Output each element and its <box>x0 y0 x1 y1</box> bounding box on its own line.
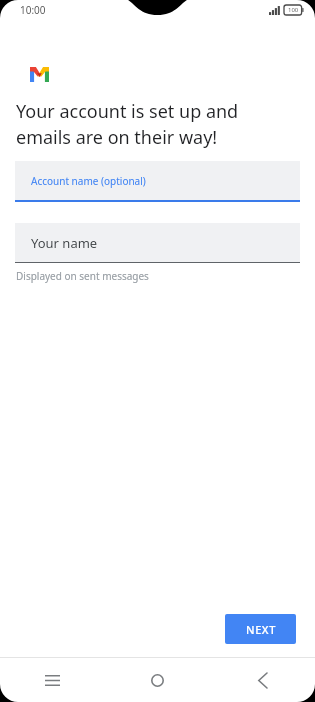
staticText: NEXT <box>246 622 276 637</box>
button[interactable]: Account name (optional) <box>15 161 300 202</box>
button[interactable]: NEXT <box>225 614 296 644</box>
staticText: 10:00 <box>20 3 46 17</box>
staticText: Your name <box>31 234 98 252</box>
staticText: Account name (optional) <box>31 174 146 188</box>
staticText: Your account is set up and emails are on… <box>16 99 239 149</box>
button[interactable]: Recent apps <box>0 658 105 702</box>
button[interactable]: Home <box>105 658 210 702</box>
button[interactable]: Back <box>210 658 315 702</box>
button[interactable]: Your name <box>15 223 300 263</box>
staticText: Displayed on sent messages <box>16 269 149 283</box>
staticText: 100 <box>288 6 299 14</box>
